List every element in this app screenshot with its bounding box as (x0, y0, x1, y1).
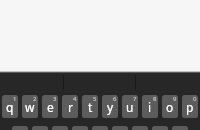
staticText: 5 (93, 95, 97, 103)
staticText: t (88, 99, 93, 115)
button[interactable]: h (112, 126, 128, 130)
staticText: r (68, 99, 73, 115)
staticText: 8 (153, 95, 157, 103)
staticText: 2 (33, 95, 37, 103)
button[interactable]: i (142, 95, 158, 118)
staticText: u (126, 99, 134, 115)
button[interactable]: d (52, 126, 68, 130)
staticText: 9 (173, 95, 177, 103)
staticText: p (186, 99, 194, 115)
button[interactable]: l (172, 126, 188, 130)
button[interactable]: w (22, 95, 38, 118)
staticText: 6 (113, 95, 117, 103)
button[interactable]: o (162, 95, 178, 118)
button[interactable]: s (32, 126, 48, 130)
staticText: 4 (73, 95, 77, 103)
button[interactable]: f (72, 126, 88, 130)
button[interactable]: g (92, 126, 108, 130)
button[interactable]: e (42, 95, 58, 118)
staticText: e (47, 99, 54, 115)
button[interactable]: r (62, 95, 78, 118)
button[interactable]: t (82, 95, 98, 118)
button[interactable]: q (2, 95, 18, 118)
button[interactable]: k (152, 126, 168, 130)
button[interactable]: a (12, 126, 28, 130)
staticText: w (25, 99, 35, 115)
staticText: 1 (13, 95, 17, 103)
staticText: i (148, 99, 152, 115)
staticText: 3 (53, 95, 57, 103)
button[interactable]: y (102, 95, 118, 118)
button[interactable]: p (182, 95, 198, 118)
staticText: 7 (133, 95, 137, 103)
button[interactable]: j (132, 126, 148, 130)
button[interactable]: u (122, 95, 138, 118)
staticText: y (107, 99, 114, 115)
staticText: o (166, 99, 174, 115)
staticText: 0 (193, 95, 197, 103)
staticText: q (6, 99, 14, 115)
